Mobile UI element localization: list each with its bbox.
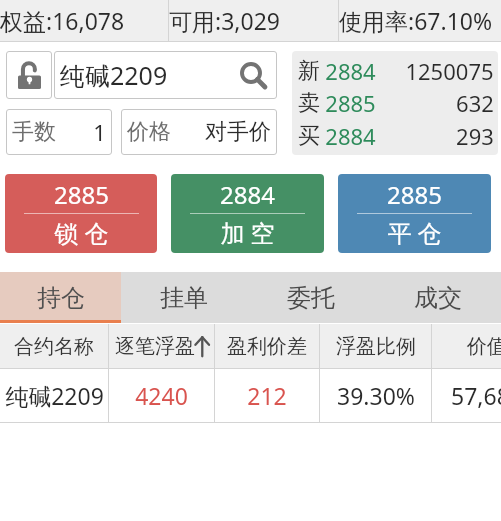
button[interactable]: 可用:3,029 [169,0,338,41]
button[interactable]: 2885 [338,174,491,253]
staticText: 买 [298,122,320,150]
staticText: 使用率:67.10% [339,5,493,36]
staticText: 2885 [325,88,376,118]
staticText: 合约名称 [14,334,94,359]
staticText: 挂单 [160,283,208,313]
other: Search contract [240,62,266,88]
button[interactable]: 逐笔浮盈 [109,324,214,368]
staticText: 逐笔浮盈 [115,334,195,359]
button[interactable]: 2884 [171,174,324,253]
button[interactable]: 合约名称 [0,324,108,368]
button[interactable]: 使用率:67.10% [339,0,501,41]
button[interactable]: 权益:16,078 [0,0,168,41]
button[interactable]: 价格 [121,109,277,155]
button[interactable]: 2885 [5,174,157,253]
button[interactable]: 纯碱2209 [54,51,277,99]
staticText: 2884 [325,56,376,86]
button[interactable]: 纯碱2209 [0,369,501,422]
button[interactable]: 新 [292,51,498,155]
staticText: 1 [93,117,106,147]
staticText: 2884 [220,178,275,211]
staticText: 权益:16,078 [0,5,125,36]
staticText: 可用:3,029 [169,5,280,36]
button[interactable]: 委托 [247,272,374,323]
staticText: 价值 [467,334,501,359]
staticText: 对手价 [205,118,271,146]
staticText: 价格 [127,118,171,146]
button[interactable]: 价值 [432,324,501,368]
button[interactable]: 持仓 [0,272,121,323]
staticText: 委托 [287,283,335,313]
button[interactable]: 手数 [6,109,112,155]
button[interactable]: 浮盈比例 [320,324,431,368]
staticText: 39.30% [337,380,415,411]
staticText: 纯碱2209 [60,58,168,92]
staticText: 卖 [298,89,320,117]
staticText: 212 [247,380,287,411]
staticText: 293 [456,121,494,151]
staticText: 手数 [12,118,56,146]
button[interactable]: Unlock trading [6,51,52,99]
staticText: 持仓 [37,283,85,313]
staticText: 成交 [414,283,462,313]
staticText: 纯碱2209 [5,380,104,411]
staticText: 加 空 [220,216,275,249]
staticText: 平 仓 [387,216,442,249]
button[interactable]: 成交 [374,272,501,323]
staticText: 锁 仓 [54,216,109,249]
staticText: 新 [298,57,320,85]
staticText: 632 [456,88,494,118]
staticText: 1250075 [405,56,494,86]
staticText: 2884 [325,121,376,151]
staticText: 4240 [135,380,188,411]
staticText: 浮盈比例 [336,334,416,359]
button[interactable]: 挂单 [121,272,247,323]
staticText: 57,680 [451,380,501,411]
staticText: 2885 [54,178,109,211]
staticText: 2885 [387,178,442,211]
button[interactable]: 盈利价差 [215,324,319,368]
staticText: 盈利价差 [227,334,307,359]
